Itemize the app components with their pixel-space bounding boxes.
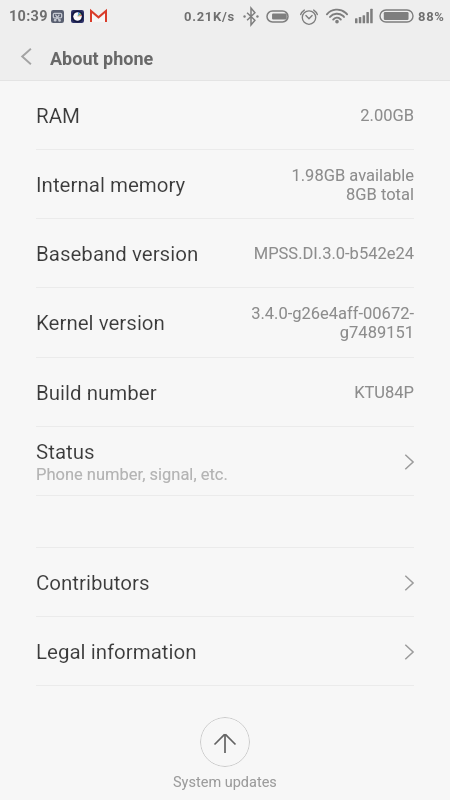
staticText: About phone (50, 48, 154, 69)
staticText: Internal memory (36, 173, 186, 197)
staticText: Phone number, signal, etc. (36, 465, 228, 484)
button[interactable]: Baseband version (0, 219, 450, 288)
staticText: 8GB total (346, 185, 414, 204)
staticText: 88% (418, 9, 445, 24)
staticText: Legal information (36, 640, 197, 664)
staticText: 0.21K/s (184, 9, 235, 24)
button[interactable]: Internal memory (0, 150, 450, 219)
staticText: Kernel version (36, 311, 165, 335)
staticText: System updates (173, 774, 277, 791)
staticText: Baseband version (36, 242, 199, 266)
staticText: 1.98GB available (291, 166, 414, 185)
button[interactable]: Contributors (0, 548, 450, 617)
staticText: g7489151 (339, 323, 414, 342)
staticText: RAM (36, 104, 80, 128)
staticText: Build number (36, 381, 157, 405)
button[interactable]: Kernel version (0, 288, 450, 358)
button[interactable]: RAM (0, 81, 450, 150)
staticText: MPSS.DI.3.0-b542e24 (253, 244, 414, 263)
button[interactable]: Legal information (0, 617, 450, 686)
staticText: Contributors (36, 571, 150, 595)
staticText: 10:39 (9, 8, 48, 25)
staticText: KTU84P (354, 383, 414, 402)
staticText: 3.4.0-g26e4aff-00672- (251, 304, 414, 323)
button[interactable]: System updates (200, 717, 250, 767)
button[interactable]: Back (0, 32, 48, 80)
staticText: 2.00GB (360, 106, 414, 125)
button[interactable]: Build number (0, 358, 450, 427)
button[interactable]: Status (0, 427, 450, 496)
staticText: Status (36, 440, 95, 464)
